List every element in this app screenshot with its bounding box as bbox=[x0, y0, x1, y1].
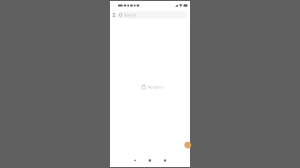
staticText: Search bbox=[124, 12, 136, 18]
button[interactable]: Search bbox=[117, 11, 187, 19]
button[interactable]: Back bbox=[134, 159, 136, 162]
button[interactable]: Compose bbox=[184, 142, 191, 148]
staticText: No items bbox=[147, 84, 163, 90]
button[interactable]: Recents bbox=[164, 159, 166, 161]
button[interactable]: Home bbox=[149, 159, 151, 162]
button[interactable]: Menu bbox=[111, 10, 117, 19]
